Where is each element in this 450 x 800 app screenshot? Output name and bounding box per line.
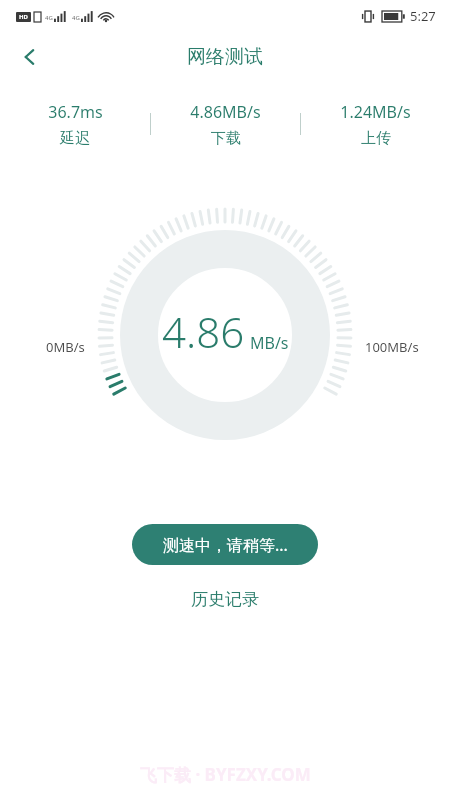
staticText: 飞下载 · BYFZXY.COM xyxy=(140,763,311,786)
staticText: MB/s xyxy=(250,332,289,354)
staticText: 1.24MB/s xyxy=(340,101,411,123)
staticText: 4G xyxy=(72,14,80,22)
staticText: 36.7ms xyxy=(48,101,103,123)
staticText: 4.86 xyxy=(162,303,245,360)
staticText: 上传 xyxy=(361,129,391,148)
button[interactable]: 4.86MB/s xyxy=(151,101,300,148)
staticText: 测速中，请稍等... xyxy=(163,534,288,556)
staticText: 4G xyxy=(45,14,53,22)
button[interactable]: Back xyxy=(8,35,52,79)
staticText: 延迟 xyxy=(60,129,90,148)
staticText: HD xyxy=(19,13,28,21)
staticText: 网络测试 xyxy=(187,45,263,69)
button[interactable]: 36.7ms xyxy=(0,101,150,148)
button[interactable]: 1.24MB/s xyxy=(301,101,450,148)
button[interactable]: 测速中，请稍等... xyxy=(132,524,318,565)
staticText: 历史记录 xyxy=(191,589,259,610)
button[interactable]: 历史记录 xyxy=(173,583,277,616)
staticText: 100MB/s xyxy=(365,338,419,356)
staticText: 下载 xyxy=(211,129,241,148)
staticText: 4.86MB/s xyxy=(190,101,261,123)
staticText: 0MB/s xyxy=(46,338,85,356)
staticText: 5:27 xyxy=(410,7,436,25)
